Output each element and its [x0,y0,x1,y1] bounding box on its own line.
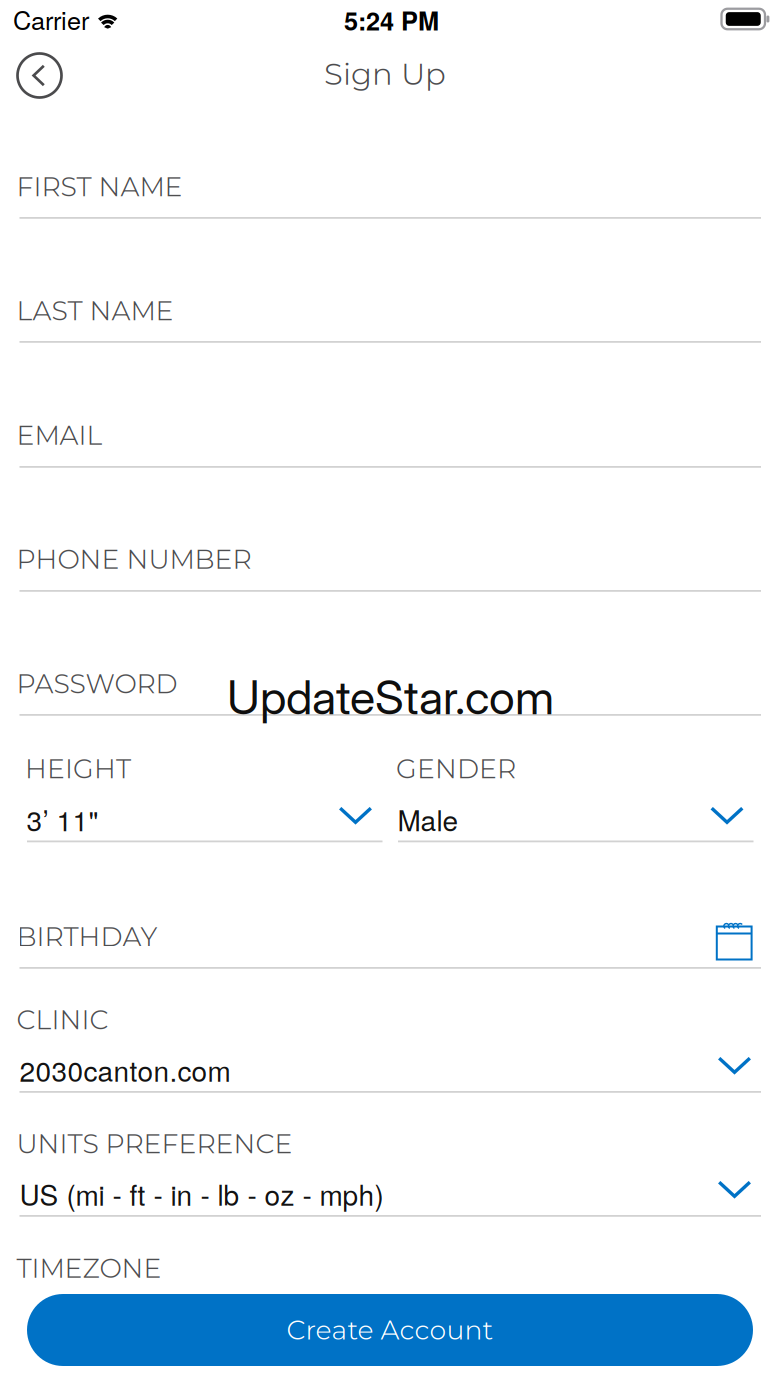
button[interactable]: HEIGHT [0,0,780,1387]
staticText: EMAIL [16,419,102,451]
staticText: UNITS PREFERENCE [16,1127,292,1160]
staticText: LAST NAME [16,294,173,327]
staticText: Carrier [13,1,89,37]
button[interactable]: Back [11,47,67,103]
staticText: UpdateStar.com [227,669,554,725]
staticText: TIMEZONE [16,1252,161,1284]
staticText: Sign Up [324,55,446,92]
staticText: GENDER [396,752,516,785]
button[interactable]: CLINIC [0,0,780,1387]
staticText: CLINIC [16,1003,108,1036]
staticText: Create Account [286,1314,493,1346]
button[interactable]: GENDER [0,0,780,1387]
staticText: 5:24 PM [344,2,439,38]
staticText: FIRST NAME [16,170,182,203]
button[interactable]: BIRTHDAY [0,0,780,1387]
staticText: 2030canton.com [19,1049,230,1090]
staticText: BIRTHDAY [16,920,157,953]
staticText: PASSWORD [16,667,177,700]
button[interactable]: UNITS PREFERENCE [0,0,780,1387]
staticText: 3’ 11" [26,799,98,839]
staticText: Male [397,799,458,839]
staticText: HEIGHT [25,752,131,785]
button[interactable]: Create Account [27,1294,753,1366]
staticText: US (mi - ft - in - lb - oz - mph) [19,1173,383,1214]
staticText: PHONE NUMBER [16,543,251,575]
